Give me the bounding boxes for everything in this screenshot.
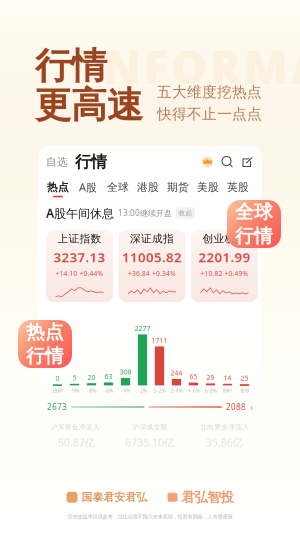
staticText: 5 xyxy=(72,373,76,382)
staticText: 更高速 xyxy=(35,83,143,127)
staticText: 热点 xyxy=(26,321,64,343)
staticText: 上证指数 xyxy=(57,232,101,245)
staticText: -9% xyxy=(70,387,79,394)
staticText: 英股 xyxy=(227,181,249,194)
staticText: 8%+ xyxy=(222,387,232,394)
staticText: 2277 xyxy=(134,324,150,333)
button[interactable]: 用户头像 xyxy=(202,156,213,167)
staticText: 美股 xyxy=(197,181,219,194)
staticText: 6-8% xyxy=(204,387,216,394)
staticText: 244 xyxy=(170,369,182,377)
button[interactable]: 创业板指 xyxy=(191,230,258,302)
staticText: 0-2% xyxy=(153,387,165,394)
staticText: A股午间休息 xyxy=(46,205,114,221)
button[interactable]: 2673 xyxy=(47,401,253,413)
button[interactable]: 收起 xyxy=(176,207,195,219)
staticText: 沪深资金净流入 xyxy=(51,423,100,431)
staticText: 35.86亿 xyxy=(206,435,244,449)
button[interactable]: 行情 xyxy=(67,154,107,170)
staticText: 65 xyxy=(189,372,197,381)
button[interactable]: 美股 xyxy=(193,180,223,198)
staticText: +10.82 +0.49% xyxy=(200,269,248,278)
staticText: 深证成指 xyxy=(130,232,174,245)
staticText: 行情 xyxy=(35,44,107,88)
staticText: 行情 xyxy=(26,344,64,367)
staticText: 2201.99 xyxy=(198,248,250,266)
staticText: 北向资金净流入 xyxy=(200,423,249,431)
staticText: 行情 xyxy=(235,224,273,247)
staticText: 0 xyxy=(55,374,59,383)
staticText: 五大维度挖热点 xyxy=(157,83,262,101)
button[interactable]: 自选 xyxy=(46,154,67,170)
staticText: A股 xyxy=(79,180,97,194)
button[interactable]: A股 xyxy=(73,180,103,198)
staticText: 君弘智投 xyxy=(181,489,233,505)
staticText: 收起 xyxy=(178,209,192,217)
button[interactable]: 期货 xyxy=(163,180,193,198)
staticText: 4-6% xyxy=(187,387,199,394)
staticText: 沪深成交额 xyxy=(132,423,167,431)
staticText: 308 xyxy=(119,368,131,376)
staticText: 国泰君安君弘 xyxy=(81,491,147,504)
button[interactable]: 编辑 xyxy=(233,156,253,167)
staticText: › xyxy=(250,401,253,413)
button[interactable]: 深证成指 xyxy=(118,230,185,302)
staticText: 1711 xyxy=(151,336,167,345)
staticText: 3237.13 xyxy=(53,248,105,266)
staticText: 创业板指 xyxy=(202,232,246,245)
staticText: 全球 xyxy=(107,181,129,194)
staticText: -2% xyxy=(138,387,147,394)
staticText: -4% xyxy=(121,387,130,394)
staticText: 跌停 xyxy=(52,387,62,394)
staticText: +36.84 +0.34% xyxy=(128,269,176,278)
staticText: -6% xyxy=(104,387,113,394)
staticText: 历史收益率仅供参考，过往业绩不预示未来表现，投资有风险，入市需谨慎 xyxy=(67,513,232,520)
staticText: +14.10 +0.44% xyxy=(55,269,103,278)
staticText: 2088 xyxy=(226,402,246,412)
staticText: 20 xyxy=(87,373,95,382)
button[interactable]: 上证指数 xyxy=(46,230,113,302)
staticText: 11005.82 xyxy=(122,248,182,266)
staticText: 29 xyxy=(206,373,214,382)
staticText: 2673 xyxy=(47,402,67,412)
button[interactable]: 英股 xyxy=(223,180,253,198)
staticText: 行情 xyxy=(75,152,107,172)
button[interactable]: 热点 xyxy=(43,180,73,198)
staticText: 6735.10亿 xyxy=(125,435,175,449)
staticText: 港股 xyxy=(137,181,159,194)
staticText: 63 xyxy=(104,372,112,381)
staticText: 自选 xyxy=(46,155,68,168)
staticText: -8% xyxy=(87,387,96,394)
staticText: 期货 xyxy=(167,181,189,194)
button[interactable]: 港股 xyxy=(133,180,163,198)
staticText: 全球 xyxy=(235,201,273,223)
staticText: 13:00继续开盘 xyxy=(118,208,172,218)
staticText: 快得不止一点点 xyxy=(157,105,262,123)
staticText: NFORMATI xyxy=(103,36,300,96)
staticText: 涨停 xyxy=(239,387,249,394)
button[interactable]: 搜索 xyxy=(213,156,233,167)
staticText: 25 xyxy=(240,374,248,383)
staticText: 热点 xyxy=(47,181,69,194)
staticText: 14 xyxy=(223,373,231,382)
staticText: -50.87亿 xyxy=(55,435,96,449)
button[interactable]: 全球 xyxy=(103,180,133,198)
staticText: 2-4% xyxy=(170,387,182,394)
